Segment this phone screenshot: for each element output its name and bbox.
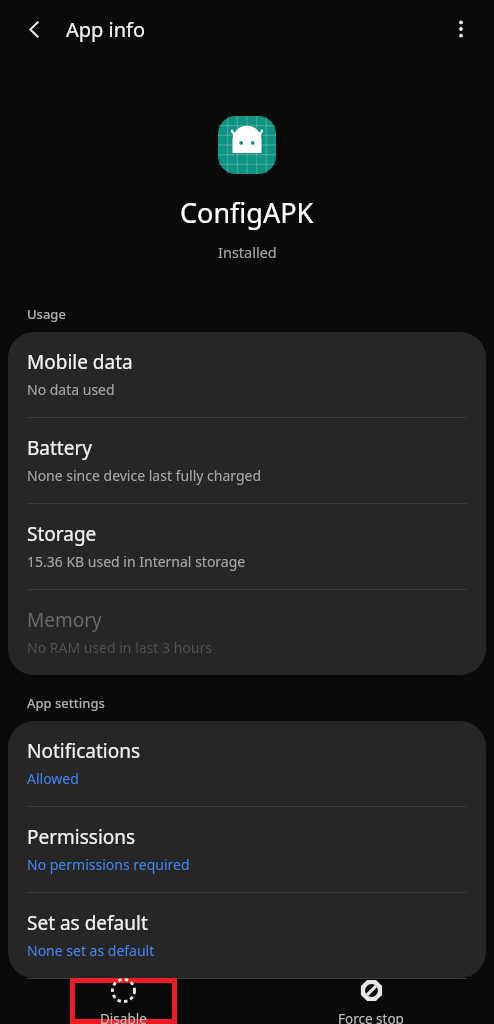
staticText: Permissions xyxy=(27,824,136,850)
staticText: Usage xyxy=(27,305,66,323)
staticText: No RAM used in last 3 hours xyxy=(27,638,212,657)
staticText: 15.36 KB used in Internal storage xyxy=(27,552,246,571)
button[interactable]: More options xyxy=(438,6,484,52)
staticText: Allowed xyxy=(27,769,79,788)
staticText: Installed xyxy=(218,242,277,262)
staticText: Mobile data xyxy=(27,349,133,375)
button[interactable]: Permissions xyxy=(8,807,486,892)
staticText: None set as default xyxy=(27,941,155,960)
button[interactable]: Notifications xyxy=(8,721,486,806)
staticText: Disable xyxy=(100,1010,147,1024)
staticText: App settings xyxy=(27,694,105,712)
staticText: Set as default xyxy=(27,910,148,936)
staticText: Storage xyxy=(27,521,97,547)
button[interactable]: Disable xyxy=(70,978,177,1024)
button[interactable]: Battery xyxy=(8,418,486,503)
staticText: ConfigAPK xyxy=(180,194,314,231)
button[interactable]: Set as default xyxy=(8,893,486,978)
staticText: No data used xyxy=(27,380,115,399)
staticText: App info xyxy=(66,16,146,43)
staticText: None since device last fully charged xyxy=(27,466,262,485)
button[interactable]: Memory xyxy=(8,590,486,675)
button[interactable]: Force stop xyxy=(317,978,424,1024)
staticText: Memory xyxy=(27,607,102,633)
staticText: Force stop xyxy=(338,1010,404,1024)
button[interactable]: Storage xyxy=(8,504,486,589)
button[interactable]: Mobile data xyxy=(8,332,486,417)
staticText: No permissions required xyxy=(27,855,190,874)
staticText: Battery xyxy=(27,435,92,461)
button[interactable]: Back xyxy=(11,6,57,52)
staticText: Notifications xyxy=(27,738,141,764)
